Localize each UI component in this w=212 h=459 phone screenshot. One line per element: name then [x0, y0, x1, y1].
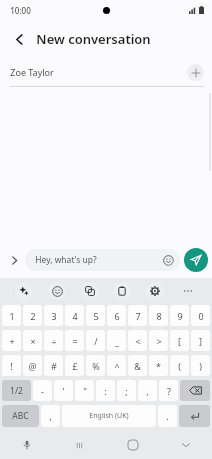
staticText: !	[10, 360, 13, 372]
staticText: .	[166, 410, 169, 422]
button[interactable]: .	[158, 405, 177, 427]
staticText: ,	[49, 410, 52, 422]
button[interactable]: 4	[65, 305, 84, 326]
staticText: _	[115, 335, 119, 347]
button[interactable]: [	[170, 330, 189, 351]
button[interactable]: ?	[159, 380, 178, 401]
button[interactable]: AI assist	[15, 282, 33, 300]
staticText: English (UK)	[89, 411, 129, 421]
button[interactable]: Expand options	[3, 249, 25, 271]
staticText: #	[51, 360, 57, 372]
button[interactable]: 8	[149, 305, 168, 326]
button[interactable]: =	[65, 330, 84, 351]
staticText: )	[199, 360, 202, 372]
button[interactable]: Enter	[179, 405, 210, 427]
button[interactable]: ×	[23, 330, 42, 351]
button[interactable]: -	[33, 380, 52, 401]
button[interactable]: Zoe Taylor	[0, 58, 212, 86]
button[interactable]: ABC	[2, 405, 39, 427]
button[interactable]: %	[86, 355, 105, 376]
staticText: 4	[72, 310, 78, 322]
button[interactable]: )	[191, 355, 210, 376]
staticText: =	[72, 335, 78, 347]
staticText: 1	[9, 310, 15, 322]
staticText: (	[178, 360, 181, 372]
button[interactable]: 5	[86, 305, 105, 326]
button[interactable]: ,	[41, 405, 60, 427]
button[interactable]: 2	[23, 305, 42, 326]
button[interactable]: @	[23, 355, 42, 376]
button[interactable]: Voice input	[0, 431, 53, 459]
button[interactable]: #	[44, 355, 63, 376]
button[interactable]: Home	[106, 431, 159, 459]
staticText: <	[135, 335, 141, 347]
button[interactable]: <	[128, 330, 147, 351]
staticText: "	[83, 385, 87, 397]
staticText: /	[94, 335, 98, 347]
button[interactable]: *	[149, 355, 168, 376]
staticText: [	[178, 335, 181, 347]
button[interactable]: Recent apps	[53, 431, 106, 459]
staticText: ;	[125, 385, 128, 397]
button[interactable]: 1/2	[2, 380, 31, 401]
staticText: +	[9, 335, 15, 347]
button[interactable]: _	[107, 330, 126, 351]
button[interactable]: !	[2, 355, 21, 376]
button[interactable]: 7	[128, 305, 147, 326]
button[interactable]: >	[149, 330, 168, 351]
button[interactable]: Hey, what's up?	[25, 249, 180, 271]
staticText: 8	[156, 310, 162, 322]
staticText: £	[72, 360, 78, 372]
button[interactable]: ÷	[44, 330, 63, 351]
button[interactable]: (	[170, 355, 189, 376]
button[interactable]: /	[86, 330, 105, 351]
button[interactable]: Stickers	[81, 282, 99, 300]
staticText: >	[156, 335, 162, 347]
button[interactable]: +	[2, 330, 21, 351]
button[interactable]: ]	[191, 330, 210, 351]
button[interactable]: ;	[117, 380, 136, 401]
staticText: @	[28, 360, 37, 372]
staticText: ,	[146, 385, 149, 397]
staticText: 3	[51, 310, 57, 322]
button[interactable]: Send	[184, 248, 208, 272]
staticText: New conversation	[36, 30, 151, 48]
button[interactable]: Back	[6, 26, 32, 52]
button[interactable]: Backspace	[180, 380, 210, 401]
button[interactable]: 1	[2, 305, 21, 326]
staticText: ABC	[12, 410, 29, 422]
button[interactable]: '	[54, 380, 73, 401]
button[interactable]: "	[75, 380, 94, 401]
staticText: Zoe Taylor	[10, 66, 54, 78]
button[interactable]: £	[65, 355, 84, 376]
staticText: *	[156, 360, 161, 372]
button[interactable]: Add recipient	[187, 64, 204, 81]
button[interactable]: 6	[107, 305, 126, 326]
staticText: 6	[114, 310, 120, 322]
staticText: 10:00	[10, 5, 31, 16]
button[interactable]: :	[96, 380, 115, 401]
button[interactable]: &	[128, 355, 147, 376]
button[interactable]: ,	[138, 380, 157, 401]
staticText: '	[62, 385, 65, 397]
staticText: :	[104, 385, 107, 397]
button[interactable]: Emoji	[48, 282, 66, 300]
staticText: &	[134, 360, 141, 372]
button[interactable]: More options	[179, 282, 197, 300]
button[interactable]: ^	[107, 355, 126, 376]
button[interactable]: 0	[191, 305, 210, 326]
staticText: ÷	[51, 335, 57, 347]
button[interactable]: Hide keyboard	[159, 431, 212, 459]
staticText: ×	[30, 335, 36, 347]
button[interactable]: Settings	[146, 282, 164, 300]
button[interactable]: Clipboard	[113, 282, 131, 300]
button[interactable]: Emoji	[162, 254, 174, 266]
staticText: 0	[198, 310, 204, 322]
button[interactable]: 9	[170, 305, 189, 326]
staticText: -	[41, 385, 44, 397]
button[interactable]: 3	[44, 305, 63, 326]
staticText: 9	[177, 310, 183, 322]
staticText: 2	[30, 310, 36, 322]
staticText: 1/2	[10, 385, 23, 397]
button[interactable]: English (UK)	[62, 405, 156, 427]
